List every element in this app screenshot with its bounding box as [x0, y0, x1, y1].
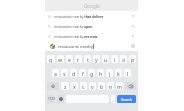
staticText: a — [54, 70, 57, 77]
staticText: k — [117, 70, 120, 77]
button[interactable]: restaurants nearby open — [45, 21, 138, 31]
button[interactable]: z — [61, 82, 69, 90]
staticText: m — [117, 83, 122, 90]
button[interactable]: g — [88, 69, 95, 77]
button[interactable]: s — [61, 69, 68, 77]
other: Clear — [131, 44, 135, 48]
button[interactable]: u — [102, 55, 109, 63]
other: Insert suggestion — [132, 35, 135, 38]
staticText: restaurants nearby me now — [54, 34, 98, 38]
staticText: restaurants nearby open — [54, 24, 93, 28]
staticText: n — [109, 83, 113, 90]
staticText: s — [63, 70, 66, 77]
staticText: q — [49, 56, 53, 63]
staticText: z — [64, 83, 67, 90]
staticText: o — [122, 56, 126, 63]
staticText: p — [131, 56, 135, 63]
button[interactable]: . — [111, 95, 115, 103]
staticText: t — [87, 56, 89, 63]
staticText: v — [91, 83, 94, 90]
staticText: u — [104, 56, 108, 63]
staticText: d — [72, 70, 76, 77]
staticText: Search — [121, 97, 132, 102]
button[interactable]: k — [115, 69, 122, 77]
button[interactable]: restaurants nearby me now — [45, 31, 138, 41]
button[interactable]: q — [47, 55, 55, 63]
staticText: h — [99, 70, 103, 77]
staticText: . — [112, 96, 114, 103]
button[interactable]: p — [129, 55, 136, 63]
button[interactable]: Shift — [47, 82, 59, 90]
button[interactable]: o — [120, 55, 127, 63]
button[interactable]: y — [93, 55, 100, 63]
button[interactable]: h — [97, 69, 104, 77]
button[interactable]: Symbols — [47, 95, 55, 103]
button[interactable]: restaurants nearby that deliver — [45, 11, 138, 21]
staticText: restaurants nearby that deliver — [54, 14, 104, 18]
other: Insert suggestion — [132, 25, 135, 28]
staticText: r — [77, 56, 80, 63]
staticText: Google — [84, 3, 100, 9]
button[interactable]: w — [57, 55, 64, 63]
button[interactable]: b — [98, 82, 105, 90]
button[interactable]: c — [80, 82, 87, 90]
staticText: i — [114, 56, 116, 63]
staticText: x — [73, 83, 76, 90]
button[interactable]: f — [79, 69, 86, 77]
button[interactable]: n — [107, 82, 114, 90]
button[interactable]: l — [124, 69, 131, 77]
button[interactable]: d — [70, 69, 77, 77]
button[interactable]: Backspace — [125, 82, 136, 90]
staticText: j — [109, 70, 111, 77]
button[interactable]: x — [71, 82, 78, 90]
staticText: l — [127, 70, 129, 77]
button[interactable]: Emoji — [57, 95, 64, 103]
button[interactable]: Search — [117, 95, 136, 103]
button[interactable]: a — [52, 69, 59, 77]
staticText: restaurants nearby — [58, 44, 93, 49]
button[interactable]: t — [84, 55, 91, 63]
button[interactable]: m — [116, 82, 123, 90]
button[interactable]: r — [75, 55, 82, 63]
staticText: y — [95, 56, 98, 63]
staticText: w — [58, 56, 63, 63]
staticText: f — [82, 70, 84, 77]
button[interactable]: restaurants nearby — [45, 41, 138, 51]
staticText: c — [82, 83, 85, 90]
other: Insert suggestion — [132, 15, 135, 18]
staticText: ?123 — [48, 97, 55, 101]
button[interactable]: j — [106, 69, 113, 77]
staticText: g — [90, 70, 94, 77]
button[interactable]: i — [111, 55, 118, 63]
button[interactable]: v — [89, 82, 96, 90]
staticText: b — [100, 83, 104, 90]
staticText: e — [68, 56, 71, 63]
button[interactable]: e — [66, 55, 73, 63]
